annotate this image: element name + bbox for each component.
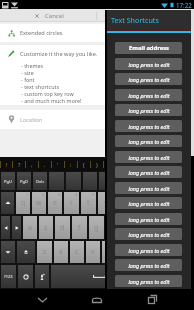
button[interactable]: @ <box>130 157 142 171</box>
button[interactable]: Email address <box>115 42 182 54</box>
button[interactable]: Key <box>163 172 177 190</box>
button[interactable]: Key <box>99 172 113 190</box>
button[interactable]: d <box>55 216 70 239</box>
button[interactable]: . <box>39 157 51 171</box>
button[interactable]: ( <box>78 157 90 171</box>
button[interactable]: & <box>169 157 181 171</box>
button[interactable]: Customize it the way you like. <box>0 45 194 105</box>
button[interactable]: r <box>64 192 79 214</box>
button[interactable]: long press to edit <box>115 135 182 147</box>
button[interactable]: h <box>106 216 121 239</box>
button[interactable]: long press to edit <box>115 182 182 194</box>
button[interactable]: Recents <box>139 289 165 310</box>
button[interactable]: y <box>98 192 113 214</box>
button[interactable]: long press to edit <box>115 104 182 116</box>
button[interactable]: k <box>140 216 155 239</box>
button[interactable]: Key <box>131 172 145 190</box>
button[interactable]: m <box>134 241 148 263</box>
button[interactable]: PgD <box>17 172 31 190</box>
button[interactable]: long press to edit <box>115 166 182 178</box>
button[interactable]: long press to edit <box>115 58 182 70</box>
button[interactable]: ! <box>1 157 12 171</box>
button[interactable]: - <box>104 157 116 171</box>
button[interactable]: long press to edit <box>115 197 182 209</box>
button[interactable]: / <box>117 157 129 171</box>
button[interactable]: Key <box>49 172 64 190</box>
button[interactable]: Shift right <box>167 241 193 263</box>
button[interactable]: i <box>132 192 147 214</box>
button[interactable]: long press to edit <box>115 244 182 256</box>
button[interactable]: ? <box>13 157 25 171</box>
button[interactable]: : <box>65 157 77 171</box>
button[interactable]: Key <box>147 172 161 190</box>
button[interactable]: Space <box>51 265 164 288</box>
button[interactable]: w <box>32 192 46 214</box>
staticText: Customize it the way you like. <box>20 50 98 58</box>
staticText: g <box>94 223 99 233</box>
button[interactable]: long press to edit <box>115 275 182 287</box>
button[interactable]: , <box>26 157 38 171</box>
button[interactable]: e <box>48 192 62 214</box>
staticText: - font <box>21 76 35 83</box>
button[interactable]: Back <box>29 289 55 310</box>
button[interactable]: Enter <box>166 265 193 288</box>
button[interactable]: t <box>81 192 96 214</box>
button[interactable]: Extended circles <box>0 24 194 42</box>
button[interactable]: Voice input <box>35 265 49 288</box>
staticText: a <box>28 223 32 233</box>
button[interactable]: a <box>23 216 37 239</box>
button[interactable]: u <box>115 192 130 214</box>
button[interactable]: long press to edit <box>115 151 182 163</box>
button[interactable]: Key <box>83 172 97 190</box>
button[interactable]: c <box>70 241 84 263</box>
staticText: 17:22 <box>176 1 192 9</box>
staticText: long press to edit <box>128 247 170 254</box>
button[interactable]: f <box>72 216 87 239</box>
button[interactable]: Emoji <box>18 265 33 288</box>
staticText: long press to edit <box>128 107 170 114</box>
button[interactable]: x <box>54 241 68 263</box>
button[interactable]: . <box>150 241 165 263</box>
button[interactable]: l <box>157 216 172 239</box>
button[interactable]: long press to edit <box>115 259 182 271</box>
button[interactable]: s <box>39 216 53 239</box>
button[interactable]: long press to edit <box>115 120 182 132</box>
button[interactable]: Enter <box>174 216 193 239</box>
button[interactable]: Key <box>115 172 129 190</box>
staticText: x <box>59 247 63 257</box>
button[interactable]: p <box>166 192 181 214</box>
button[interactable]: Move left <box>1 216 10 239</box>
button[interactable]: long press to edit <box>115 228 182 240</box>
button[interactable]: Backspace <box>183 192 193 214</box>
button[interactable]: # <box>143 157 155 171</box>
button[interactable]: o <box>149 192 164 214</box>
button[interactable]: PgU <box>1 172 15 190</box>
button[interactable]: _ <box>182 157 194 171</box>
button[interactable]: ; <box>156 157 168 171</box>
button[interactable]: ' <box>52 157 64 171</box>
button[interactable]: v <box>86 241 100 263</box>
button[interactable]: ) <box>91 157 103 171</box>
button[interactable]: z <box>37 241 52 263</box>
button[interactable]: n <box>118 241 132 263</box>
button[interactable]: b <box>102 241 116 263</box>
button[interactable]: Shift <box>17 241 35 263</box>
staticText: n <box>123 247 128 257</box>
button[interactable]: long press to edit <box>115 89 182 101</box>
button[interactable]: Key <box>66 172 81 190</box>
button[interactable]: Home <box>84 289 110 310</box>
button[interactable]: long press to edit <box>115 73 182 85</box>
button[interactable]: Location <box>0 110 194 129</box>
button[interactable]: ?123 <box>1 265 16 288</box>
staticText: 7 <box>126 192 129 197</box>
button[interactable]: Move down <box>1 241 15 263</box>
button[interactable]: long press to edit <box>115 213 182 225</box>
button[interactable]: Close <box>31 10 64 21</box>
button[interactable]: Move up <box>1 192 14 214</box>
button[interactable]: Key <box>179 172 193 190</box>
button[interactable]: Move right <box>12 216 21 239</box>
button[interactable]: j <box>123 216 138 239</box>
button[interactable]: g <box>89 216 104 239</box>
button[interactable]: q <box>16 192 30 214</box>
button[interactable]: Del« <box>33 172 47 190</box>
